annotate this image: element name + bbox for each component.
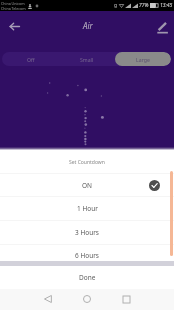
staticText: Large [136,56,150,63]
staticText: 1 Hour [77,204,98,213]
button[interactable]: Back [4,16,24,36]
staticText: Off [27,56,35,63]
button[interactable]: Off [2,52,59,66]
staticText: 3 Hours [75,228,99,237]
staticText: ON [82,181,93,190]
staticText: Air [83,20,93,31]
staticText: 13:45 [160,2,173,9]
button[interactable]: 6 Hours [0,245,174,261]
button[interactable]: Small [59,52,115,66]
staticText: Set Countdown [69,159,105,166]
button[interactable]: Edit [152,17,172,37]
button[interactable]: Home [77,289,97,309]
button[interactable]: 1 Hour [0,197,174,220]
staticText: Done [79,273,96,282]
button[interactable]: Large [115,52,171,66]
staticText: 6 Hours [75,251,99,260]
button[interactable]: Back [38,289,58,309]
staticText: g [114,2,118,9]
button[interactable]: Done [0,266,174,289]
staticText: China Telecom [1,6,26,11]
button[interactable]: 3 Hours [0,221,174,244]
button[interactable]: Recents [116,289,136,309]
button[interactable]: ON [0,174,174,196]
staticText: 77% [139,2,149,9]
staticText: China Unicom [1,1,25,6]
staticText: Small [80,56,94,63]
